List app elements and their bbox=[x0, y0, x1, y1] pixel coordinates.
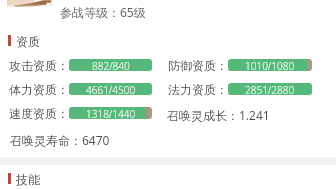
staticText: 4661/4500 bbox=[86, 83, 136, 95]
button[interactable] bbox=[168, 80, 312, 98]
button[interactable] bbox=[9, 56, 152, 74]
button[interactable] bbox=[6, 32, 66, 49]
staticText: 体力资质： bbox=[9, 82, 69, 97]
staticText: 法力资质： bbox=[168, 82, 228, 97]
staticText: 1318/1440 bbox=[86, 107, 136, 119]
staticText: 882/840 bbox=[92, 59, 130, 71]
button[interactable] bbox=[9, 80, 152, 98]
staticText: 速度资质： bbox=[9, 106, 69, 121]
button[interactable] bbox=[6, 170, 66, 187]
staticText: 攻击资质： bbox=[9, 58, 69, 73]
button[interactable]: Pet portrait bbox=[7, 0, 53, 9]
button[interactable] bbox=[10, 129, 115, 147]
button[interactable] bbox=[167, 104, 277, 122]
staticText: 资质 bbox=[16, 34, 40, 49]
button[interactable] bbox=[9, 104, 152, 122]
staticText: 1010/1080 bbox=[245, 59, 295, 71]
staticText: 2851/2880 bbox=[245, 83, 295, 95]
staticText: 参战等级：65级 bbox=[60, 4, 146, 20]
staticText: 召唤灵成长：1.241 bbox=[167, 107, 270, 123]
staticText: 召唤灵寿命：6470 bbox=[10, 132, 110, 148]
button[interactable] bbox=[168, 56, 312, 74]
staticText: 技能 bbox=[16, 172, 40, 187]
staticText: 防御资质： bbox=[168, 58, 228, 73]
